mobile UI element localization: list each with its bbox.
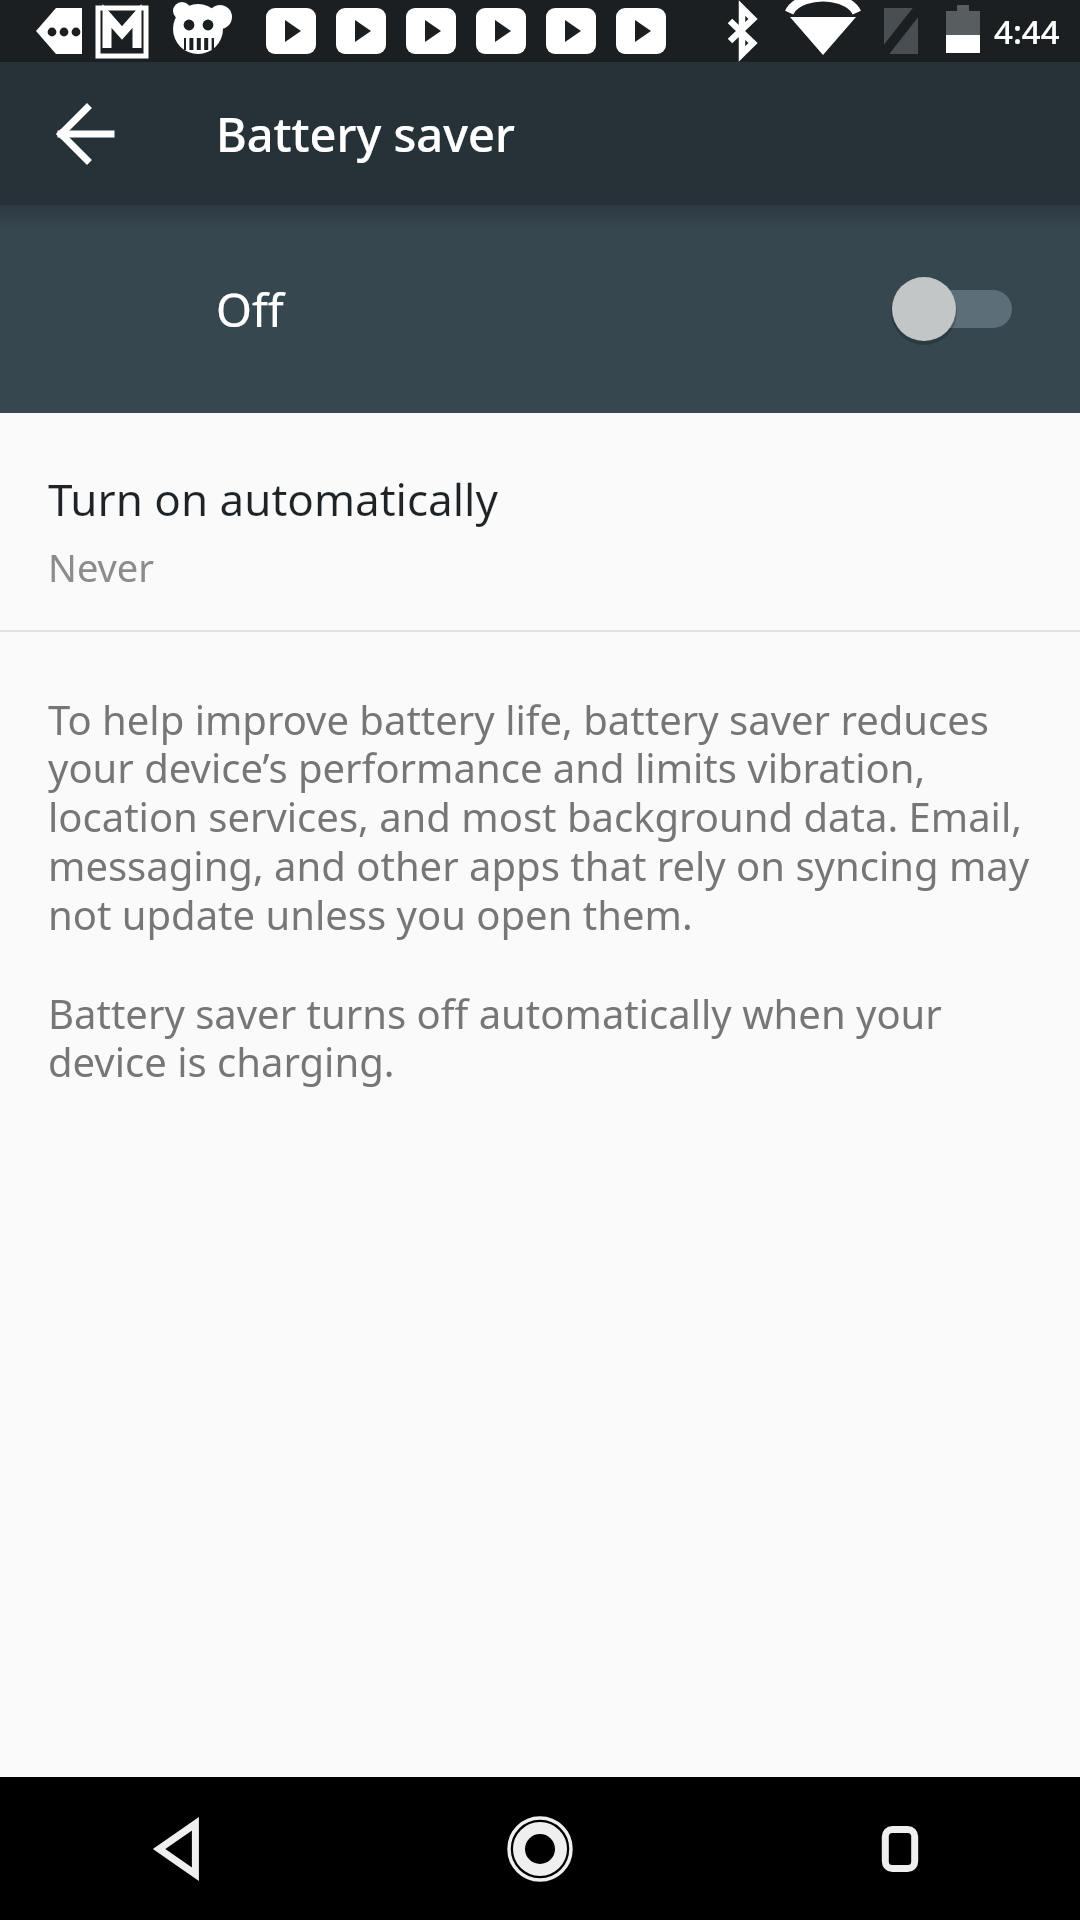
button[interactable]: Off bbox=[0, 205, 1080, 413]
staticText: Turn on automatically bbox=[48, 469, 498, 529]
button[interactable]: Recent apps bbox=[720, 1777, 1080, 1920]
staticText: To help improve battery life, battery sa… bbox=[48, 692, 1038, 942]
staticText: Battery saver bbox=[216, 102, 515, 166]
button[interactable]: Back bbox=[25, 74, 145, 194]
button[interactable]: Battery saver toggle, off bbox=[880, 261, 1020, 357]
staticText: Battery saver turns off automatically wh… bbox=[48, 986, 1038, 1089]
button[interactable]: Turn on automatically bbox=[0, 413, 1080, 630]
button[interactable]: Home bbox=[360, 1777, 720, 1920]
staticText: 4:44 bbox=[994, 9, 1060, 54]
staticText: Off bbox=[216, 278, 284, 341]
button[interactable]: Back bbox=[0, 1777, 360, 1920]
staticText: Never bbox=[48, 541, 154, 593]
